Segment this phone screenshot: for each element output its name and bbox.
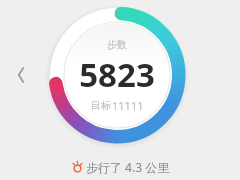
- button[interactable]: 步行了 4.3 公里: [71, 159, 170, 175]
- staticText: 步行了 4.3 公里: [86, 159, 170, 175]
- staticText: 目标: [91, 99, 111, 112]
- staticText: 步数: [107, 38, 127, 51]
- button[interactable]: Step progress dial: [46, 4, 188, 146]
- staticText: 11111: [112, 98, 144, 113]
- button[interactable]: Back: [8, 62, 34, 88]
- staticText: 5823: [79, 52, 155, 97]
